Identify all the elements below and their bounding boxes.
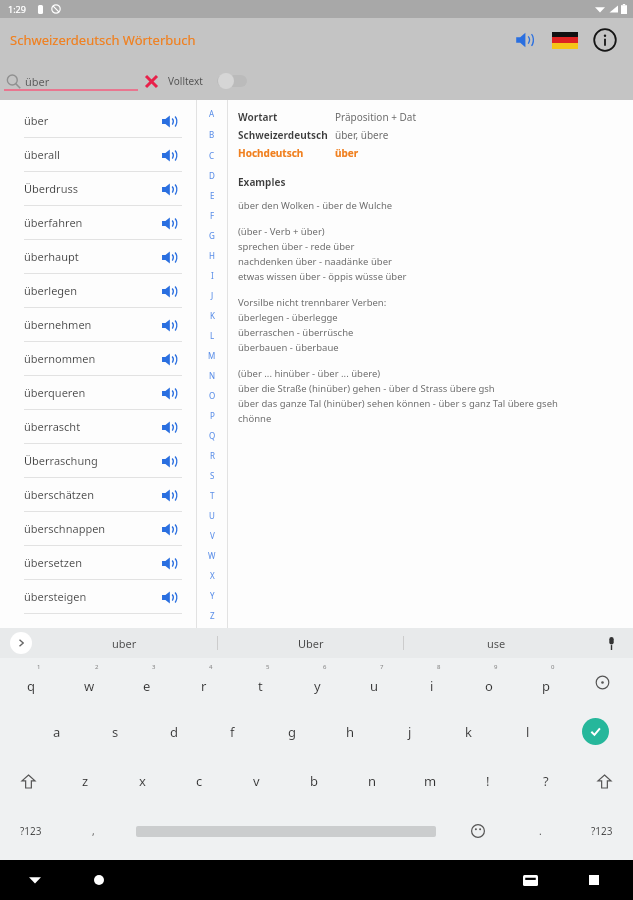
button[interactable]: C <box>197 145 227 165</box>
button[interactable]: überschnappen <box>0 512 196 545</box>
button[interactable]: s <box>86 707 144 756</box>
button[interactable]: a <box>28 707 86 756</box>
button[interactable]: M <box>197 345 227 365</box>
button[interactable]: Emoji <box>447 806 509 856</box>
button[interactable]: 0 <box>517 658 574 707</box>
button[interactable]: Play über <box>156 108 182 134</box>
button[interactable]: j <box>380 707 439 756</box>
button[interactable]: 4 <box>175 658 232 707</box>
button[interactable]: use <box>404 628 589 658</box>
button[interactable]: G <box>197 225 227 245</box>
button[interactable]: Speak <box>509 24 541 56</box>
button[interactable]: A <box>197 103 227 124</box>
button[interactable]: Voice input <box>589 628 633 658</box>
button[interactable]: Play überrascht <box>156 414 182 440</box>
button[interactable]: X <box>197 565 227 585</box>
button[interactable]: Home <box>82 863 116 897</box>
button[interactable]: überfahren <box>0 206 196 239</box>
button[interactable]: Shift <box>575 756 633 806</box>
button[interactable]: S <box>197 465 227 485</box>
button[interactable]: m <box>401 756 459 806</box>
button[interactable]: b <box>285 756 343 806</box>
button[interactable]: B <box>197 124 227 145</box>
button[interactable]: L <box>197 325 227 345</box>
button[interactable]: 1 <box>2 658 60 707</box>
button[interactable]: 3 <box>118 658 175 707</box>
button[interactable]: Backspace <box>574 658 631 707</box>
button[interactable]: W <box>197 545 227 565</box>
button[interactable]: Enter <box>557 707 633 756</box>
button[interactable]: k <box>439 707 498 756</box>
button[interactable]: Space <box>124 806 447 856</box>
button[interactable]: übersetzen <box>0 546 196 579</box>
button[interactable]: Überdruss <box>0 172 196 205</box>
button[interactable]: Play überschätzen <box>156 482 182 508</box>
button[interactable]: K <box>197 305 227 325</box>
button[interactable]: P <box>197 405 227 425</box>
button[interactable]: übersteigen <box>0 580 196 613</box>
button[interactable]: Clear search <box>138 68 164 94</box>
button[interactable]: g <box>262 707 321 756</box>
button[interactable]: Überraschung <box>0 444 196 477</box>
button[interactable]: Play überhaupt <box>156 244 182 270</box>
button[interactable]: E <box>197 185 227 205</box>
button[interactable]: übernommen <box>0 342 196 375</box>
button[interactable]: z <box>57 756 114 806</box>
button[interactable]: Language German <box>549 24 581 56</box>
button[interactable] <box>217 71 251 91</box>
button[interactable]: l <box>498 707 557 756</box>
button[interactable]: Play Überraschung <box>156 448 182 474</box>
button[interactable]: Play übersetzen <box>156 550 182 576</box>
button[interactable]: Play Überdruss <box>156 176 182 202</box>
button[interactable]: Shift <box>0 756 57 806</box>
button[interactable]: überrascht <box>0 410 196 443</box>
button[interactable]: überhaupt <box>0 240 196 273</box>
button[interactable]: Play übernommen <box>156 346 182 372</box>
button[interactable]: 2 <box>60 658 118 707</box>
button[interactable]: I <box>197 265 227 285</box>
button[interactable]: H <box>197 245 227 265</box>
button[interactable]: x <box>114 756 171 806</box>
button[interactable]: N <box>197 365 227 385</box>
button[interactable]: 8 <box>403 658 460 707</box>
button[interactable]: Y <box>197 585 227 605</box>
button[interactable]: T <box>197 485 227 505</box>
button[interactable]: uber <box>32 628 217 658</box>
button[interactable]: 5 <box>232 658 289 707</box>
button[interactable]: f <box>203 707 262 756</box>
button[interactable]: O <box>197 385 227 405</box>
button[interactable]: überqueren <box>0 376 196 409</box>
button[interactable]: Uber <box>218 628 403 658</box>
button[interactable]: V <box>197 525 227 545</box>
button[interactable]: Expand suggestions <box>10 632 32 654</box>
button[interactable]: übernehmen <box>0 308 196 341</box>
button[interactable]: Hide keyboard <box>18 863 52 897</box>
button[interactable]: ! <box>459 756 517 806</box>
button[interactable]: Play übersteigen <box>156 584 182 610</box>
button[interactable]: über <box>0 104 196 137</box>
button[interactable]: ?123 <box>571 806 633 856</box>
button[interactable]: 6 <box>289 658 346 707</box>
button[interactable]: D <box>197 165 227 185</box>
button[interactable]: Switch keyboard <box>513 863 547 897</box>
button[interactable]: h <box>321 707 380 756</box>
button[interactable]: J <box>197 285 227 305</box>
button[interactable]: v <box>228 756 285 806</box>
button[interactable]: d <box>144 707 203 756</box>
button[interactable]: F <box>197 205 227 225</box>
button[interactable]: überlegen <box>0 274 196 307</box>
button[interactable]: Play überqueren <box>156 380 182 406</box>
button[interactable]: Recents <box>577 863 611 897</box>
button[interactable]: n <box>343 756 401 806</box>
button[interactable]: Play überall <box>156 142 182 168</box>
button[interactable]: ?123 <box>0 806 62 856</box>
button[interactable]: überall <box>0 138 196 171</box>
button[interactable]: c <box>171 756 228 806</box>
button[interactable]: R <box>197 445 227 465</box>
button[interactable]: Q <box>197 425 227 445</box>
button[interactable]: Info <box>589 24 621 56</box>
button[interactable]: Play übernehmen <box>156 312 182 338</box>
button[interactable]: Play überschnappen <box>156 516 182 542</box>
